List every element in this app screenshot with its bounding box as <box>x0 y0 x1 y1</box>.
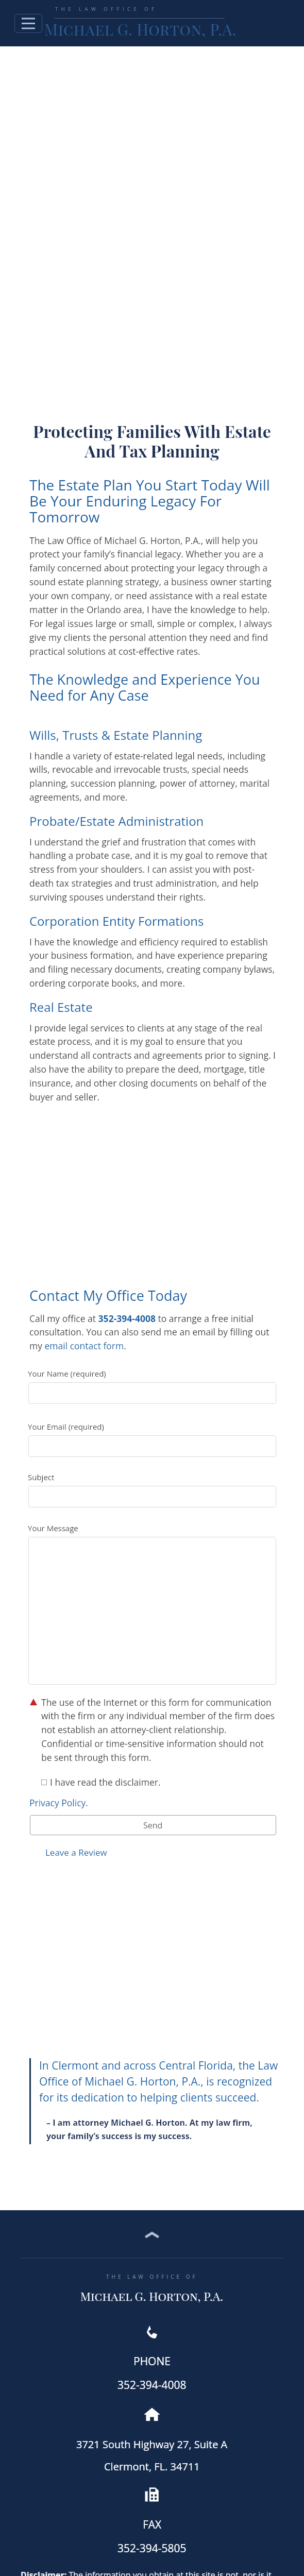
button[interactable]: Send <box>30 1815 276 1835</box>
staticText: I handle a variety of estate-related leg… <box>29 750 276 803</box>
button[interactable]: Privacy Policy. <box>29 1797 88 1809</box>
staticText: I provide legal services to clients at a… <box>29 1022 276 1103</box>
staticText: Clermont, FL. 34711 <box>104 2460 200 2473</box>
staticText: Your Message <box>28 1523 78 1533</box>
staticText: I have the knowledge and efficiency requ… <box>29 936 276 989</box>
staticText: Contact My Office Today <box>29 1286 276 1305</box>
staticText: The Law Office of Michael G. Horton, P.A… <box>29 534 276 657</box>
staticText: Corporation Entity Formations <box>29 912 204 929</box>
staticText: 3721 South Highway 27, Suite A <box>76 2437 228 2451</box>
staticText: In Clermont and across Central Florida, … <box>39 2058 283 2105</box>
staticText: Your Email (required) <box>28 1421 104 1432</box>
button[interactable]: 352-394-4008 <box>117 2378 187 2393</box>
staticText: Subject <box>28 1472 55 1482</box>
button[interactable] <box>28 1435 276 1457</box>
staticText: I understand the grief and frustration t… <box>29 836 276 903</box>
staticText: Disclaimer: The information you obtain a… <box>21 2569 283 2576</box>
button[interactable]: I have read the disclaimer <box>41 1780 47 1785</box>
staticText: Michael G. Horton, P.A. <box>80 2288 224 2304</box>
staticText: FAX <box>143 2517 162 2532</box>
staticText: Wills, Trusts & Estate Planning <box>29 726 202 743</box>
staticText: Protecting Families With Estate And Tax … <box>26 420 278 462</box>
staticText: Probate/Estate Administration <box>29 812 204 829</box>
staticText: I have read the disclaimer. <box>50 1776 161 1788</box>
button[interactable]: Leave a Review <box>45 1846 107 1858</box>
staticText: Send <box>143 1820 163 1831</box>
staticText: The use of the Internet or this form for… <box>41 1696 276 1764</box>
button[interactable]: Back to top <box>143 2230 161 2240</box>
button[interactable]: Menu <box>14 14 42 33</box>
staticText: Real Estate <box>29 998 93 1015</box>
staticText: PHONE <box>133 2354 171 2369</box>
staticText: – I am attorney Michael G. Horton. At my… <box>46 2117 263 2142</box>
staticText: The Knowledge and Experience You Need fo… <box>29 670 276 705</box>
button[interactable] <box>28 1486 276 1507</box>
staticText: THE LAW OFFICE OF <box>106 2273 198 2280</box>
staticText: The Estate Plan You Start Today Will Be … <box>29 475 276 527</box>
button[interactable] <box>28 1537 276 1685</box>
staticText: 352-394-5805 <box>117 2541 187 2556</box>
staticText: THE LAW OFFICE OF <box>55 6 158 12</box>
staticText: Your Name (required) <box>28 1368 106 1379</box>
staticText: Call my office at 352-394-4008 to arrang… <box>29 1312 276 1352</box>
button[interactable] <box>28 1382 276 1404</box>
staticText: Michael G. Horton, P.A. <box>44 19 237 40</box>
